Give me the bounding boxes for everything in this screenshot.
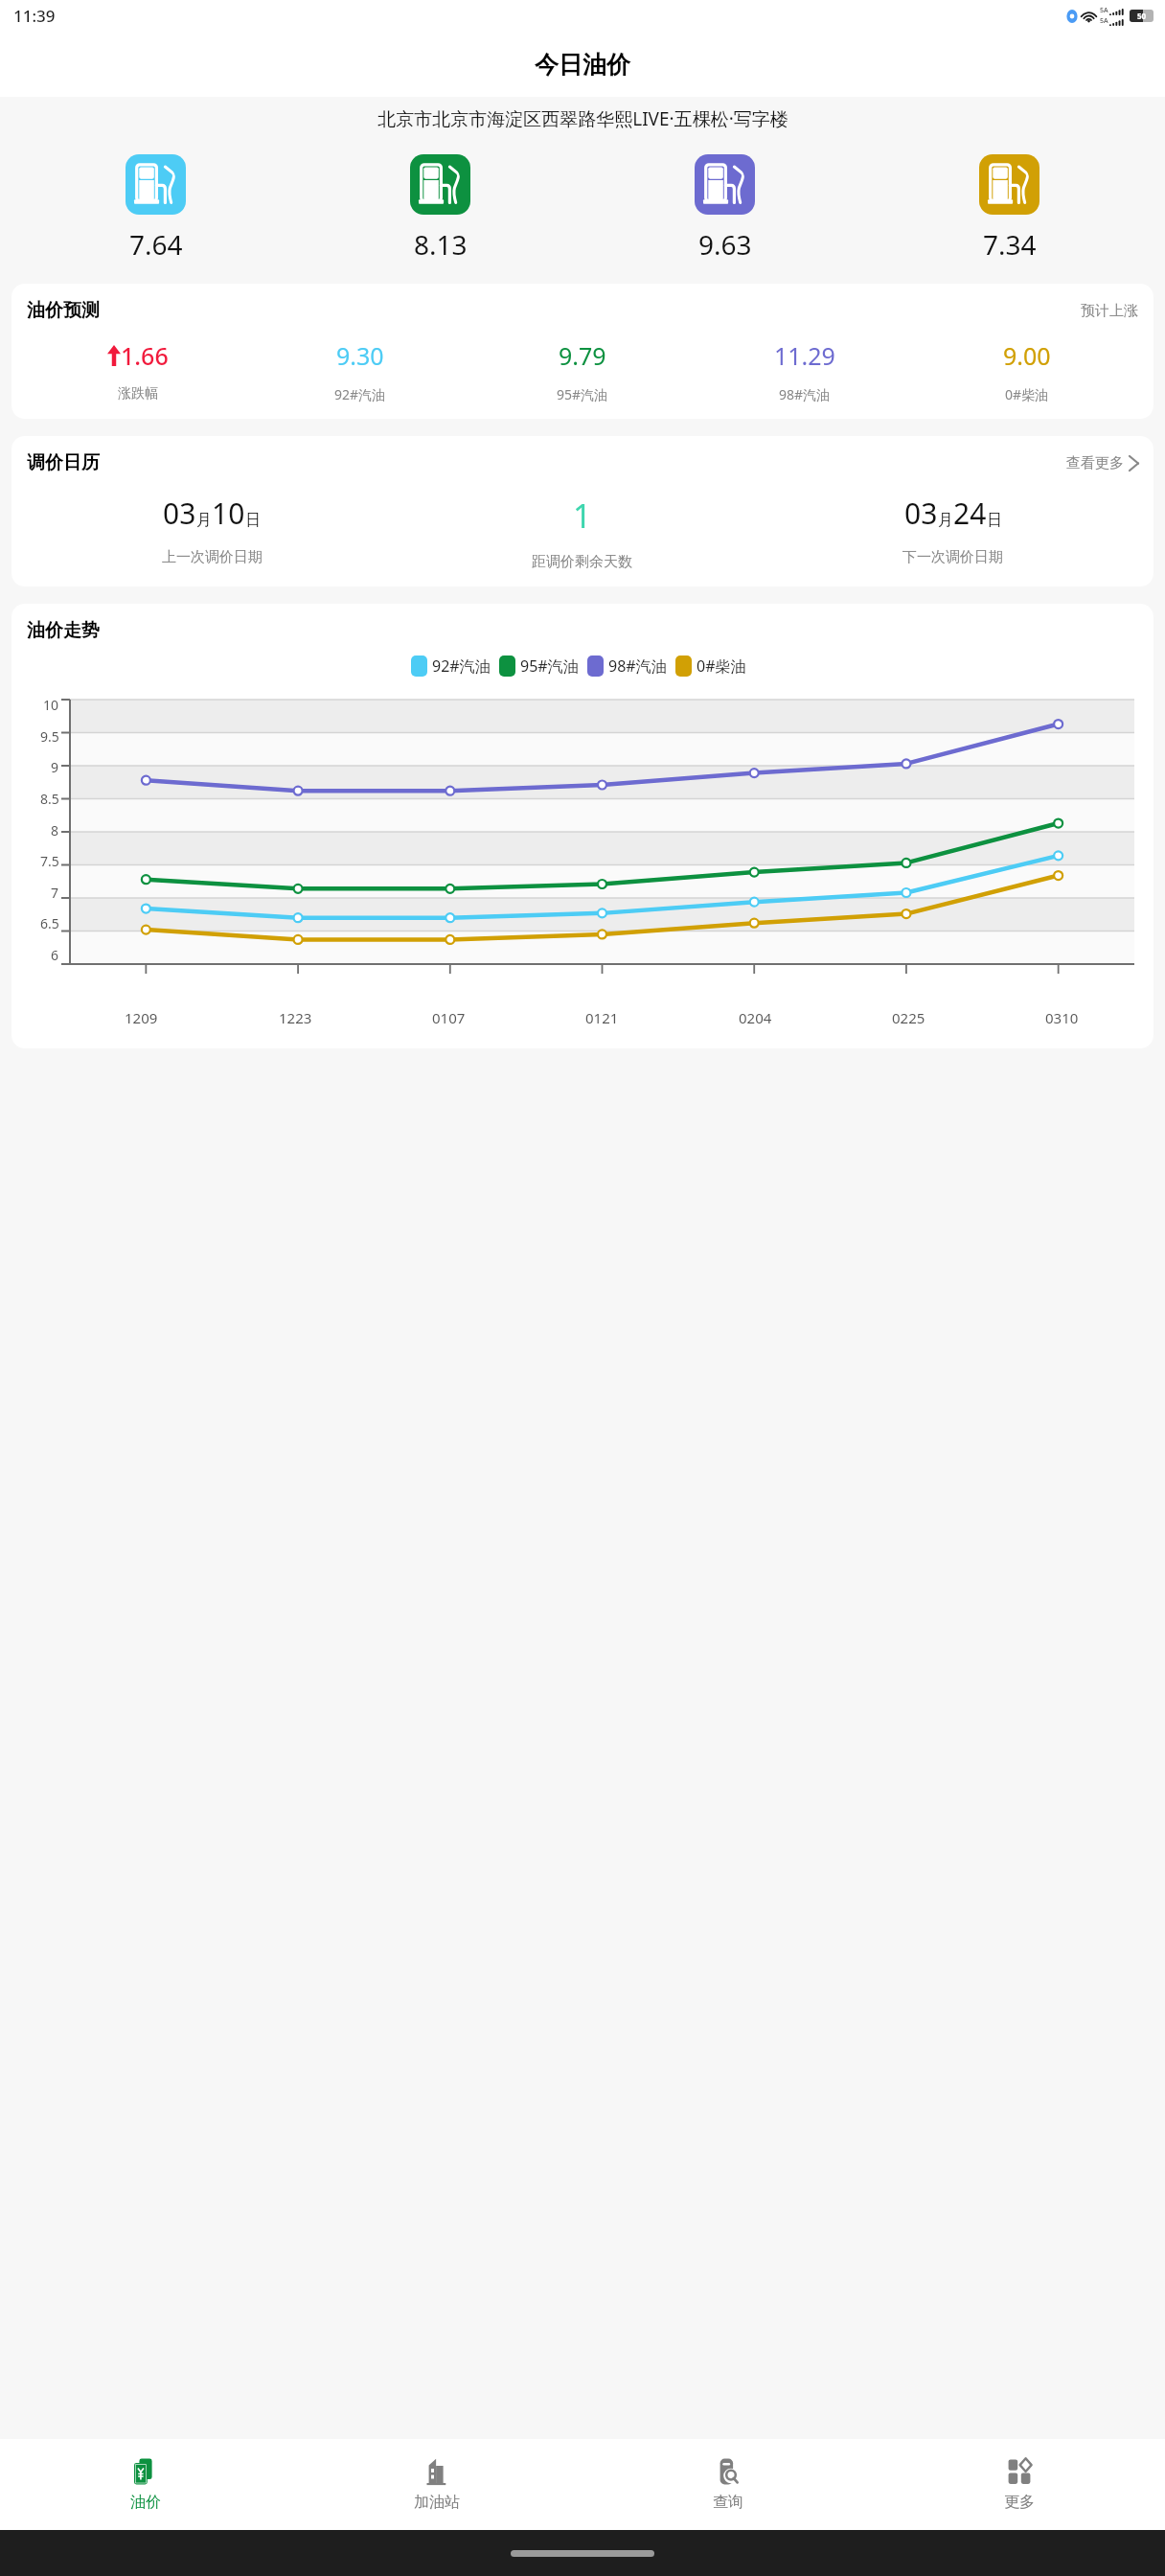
staticText: 日 xyxy=(987,511,1002,530)
staticText: 距调价剩余天数 xyxy=(532,553,632,571)
staticText: 7.64 xyxy=(129,226,183,263)
staticText: 今日油价 xyxy=(535,50,630,80)
staticText: 查询 xyxy=(713,2493,743,2512)
button[interactable]: 9.63 xyxy=(582,154,867,263)
staticText: 加油站 xyxy=(414,2493,460,2512)
staticText: 上一次调价日期 xyxy=(162,548,263,566)
staticText: 7.34 xyxy=(983,226,1037,263)
staticText: 油价走势 xyxy=(27,619,100,642)
staticText: 调价日历 xyxy=(27,451,100,474)
staticText: 95#汽油 xyxy=(520,655,579,677)
staticText: 北京市北京市海淀区西翠路华熙LIVE·五棵松·写字楼 xyxy=(377,106,788,131)
staticText: 8 xyxy=(51,821,59,839)
staticText: 油价 xyxy=(130,2493,161,2512)
staticText: 预计上涨 xyxy=(1081,302,1138,320)
staticText: 1 xyxy=(573,494,592,538)
staticText: 查看更多 xyxy=(1066,454,1124,472)
staticText: 10 xyxy=(212,494,245,533)
staticText: 1.66 xyxy=(121,339,169,372)
staticText: 9 xyxy=(51,758,59,776)
staticText: 11.29 xyxy=(774,339,835,372)
staticText: 9.63 xyxy=(698,226,752,263)
staticText: 7.5 xyxy=(40,852,59,870)
staticText: 0#柴油 xyxy=(1005,385,1049,403)
staticText: 9.00 xyxy=(1003,339,1051,372)
staticText: 7 xyxy=(51,884,59,902)
staticText: 6 xyxy=(51,946,59,964)
staticText: 日 xyxy=(245,511,261,530)
staticText: 8.5 xyxy=(40,790,59,808)
staticText: 9.30 xyxy=(336,339,384,372)
staticText: 8.13 xyxy=(414,226,468,263)
button[interactable]: 8.13 xyxy=(298,154,582,263)
button[interactable]: 更多 xyxy=(874,2439,1165,2530)
staticText: 50 xyxy=(1137,11,1147,21)
staticText: 03 xyxy=(163,494,196,533)
staticText: 油价预测 xyxy=(27,299,100,322)
staticText: 下一次调价日期 xyxy=(902,548,1003,566)
staticText: 5A xyxy=(1100,6,1108,15)
staticText: 92#汽油 xyxy=(334,385,386,403)
button[interactable]: 7.64 xyxy=(13,154,298,263)
button[interactable]: 查询 xyxy=(582,2439,874,2530)
staticText: 1223 xyxy=(279,1008,312,1027)
button[interactable]: 查看更多 xyxy=(1066,454,1138,472)
staticText: 0121 xyxy=(585,1008,619,1027)
staticText: 0310 xyxy=(1045,1008,1079,1027)
staticText: 9.79 xyxy=(559,339,606,372)
staticText: 涨跌幅 xyxy=(118,385,158,402)
staticText: 03 xyxy=(904,494,938,533)
staticText: 月 xyxy=(196,511,212,530)
staticText: 98#汽油 xyxy=(608,655,667,677)
staticText: 9.5 xyxy=(40,727,59,746)
button[interactable]: 加油站 xyxy=(291,2439,582,2530)
staticText: 0225 xyxy=(892,1008,925,1027)
button[interactable]: 油价 xyxy=(0,2439,291,2530)
staticText: 0107 xyxy=(432,1008,466,1027)
staticText: 月 xyxy=(938,511,953,530)
staticText: 95#汽油 xyxy=(557,385,608,403)
staticText: 1209 xyxy=(125,1008,158,1027)
staticText: 10 xyxy=(43,696,59,714)
staticText: 0204 xyxy=(739,1008,772,1027)
button[interactable]: 7.34 xyxy=(867,154,1152,263)
staticText: 11:39 xyxy=(13,5,56,27)
staticText: 92#汽油 xyxy=(432,655,491,677)
staticText: 5A xyxy=(1100,16,1108,26)
staticText: 0#柴油 xyxy=(697,655,746,677)
staticText: 24 xyxy=(953,494,987,533)
staticText: 6.5 xyxy=(40,914,59,932)
staticText: 更多 xyxy=(1004,2493,1035,2512)
staticText: 98#汽油 xyxy=(779,385,831,403)
